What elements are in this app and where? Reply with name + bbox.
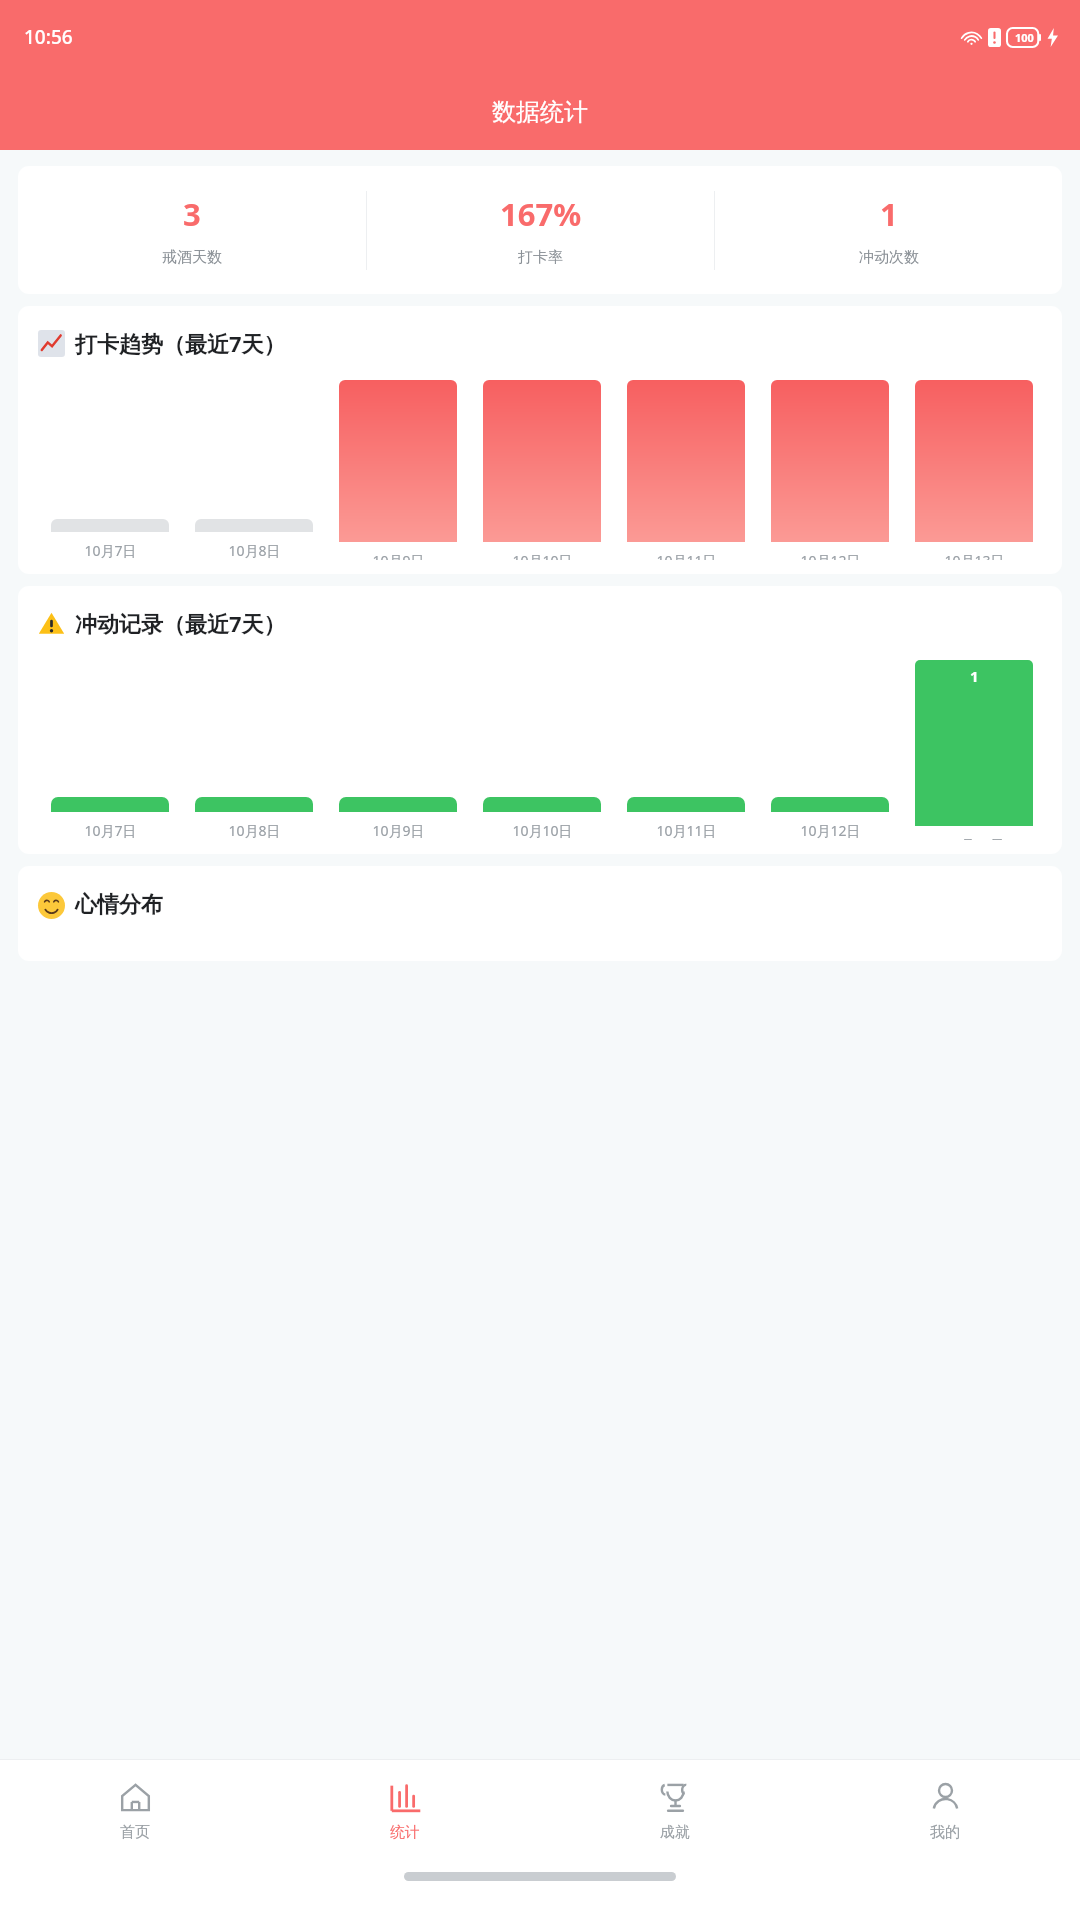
staticText: 1 xyxy=(880,193,898,235)
button[interactable]: 成就 xyxy=(540,1779,810,1842)
staticText: 10月9日 xyxy=(372,821,425,840)
staticText: 10:56 xyxy=(24,24,73,50)
staticText: 戒酒天数 xyxy=(162,248,222,267)
staticText: 3 xyxy=(183,193,201,235)
staticText: 打卡趋势（最近7天） xyxy=(75,328,286,358)
button[interactable]: 167% xyxy=(367,193,714,267)
staticText: 冲动记录（最近7天） xyxy=(75,608,286,638)
staticText: 10月10日 xyxy=(512,551,573,560)
staticText: 心情分布 xyxy=(75,891,163,919)
staticText: 10月7日 xyxy=(84,821,137,840)
staticText: 10月13日 xyxy=(944,551,1005,560)
staticText: 100 xyxy=(1015,30,1034,45)
staticText: 167% xyxy=(500,193,582,235)
staticText: 首页 xyxy=(120,1823,150,1842)
button[interactable]: 统计 xyxy=(270,1779,540,1842)
staticText: 我的 xyxy=(930,1823,960,1842)
staticText: 数据统计 xyxy=(492,97,588,127)
staticText: 统计 xyxy=(390,1823,420,1842)
button[interactable]: 我的 xyxy=(810,1779,1080,1842)
staticText: 打卡率 xyxy=(518,248,563,267)
staticText: 1 xyxy=(970,666,979,686)
staticText: 成就 xyxy=(660,1823,690,1842)
button[interactable]: 首页 xyxy=(0,1779,270,1842)
button[interactable]: 1 xyxy=(715,193,1062,267)
button[interactable]: 3 xyxy=(18,193,366,267)
staticText: 10月9日 xyxy=(372,551,425,560)
staticText: 冲动次数 xyxy=(859,248,919,267)
staticText: 10月12日 xyxy=(800,551,861,560)
staticText: 10月13日 xyxy=(944,835,1005,840)
staticText: 10月11日 xyxy=(656,551,717,560)
staticText: 10月8日 xyxy=(228,541,281,560)
staticText: 10月10日 xyxy=(512,821,573,840)
staticText: 10月11日 xyxy=(656,821,717,840)
staticText: 10月8日 xyxy=(228,821,281,840)
staticText: 10月7日 xyxy=(84,541,137,560)
staticText: 10月12日 xyxy=(800,821,861,840)
